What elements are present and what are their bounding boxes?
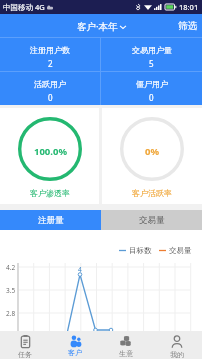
button[interactable]: 活跃用户 — [0, 72, 100, 105]
staticText: 我的 — [170, 350, 184, 359]
button[interactable]: Business — [100, 331, 151, 359]
staticText: 中国移动 4G — [3, 2, 45, 12]
button[interactable]: 注册用户数 — [0, 38, 100, 71]
staticText: 2 — [48, 58, 53, 69]
staticText: 0% — [145, 145, 160, 158]
button[interactable]: Tasks — [0, 331, 50, 359]
button[interactable]: Profile — [151, 331, 202, 359]
staticText: 3.5 — [6, 286, 16, 295]
button[interactable]: 100.0% — [0, 108, 99, 204]
staticText: 交易用户量 — [132, 45, 172, 55]
staticText: 筛选 — [178, 20, 197, 32]
staticText: 100.0% — [34, 145, 67, 158]
button[interactable]: 客户·本年 — [71, 17, 132, 36]
staticText: 交易量 — [169, 246, 192, 255]
staticText: 客户渗透率 — [30, 188, 70, 198]
staticText: 4.2 — [6, 263, 16, 272]
staticText: 客户 — [68, 348, 82, 357]
button[interactable]: Customers — [50, 331, 100, 359]
staticText: 目标数 — [129, 246, 152, 255]
staticText: 注册量 — [38, 215, 64, 226]
staticText: 18:01 — [179, 2, 199, 12]
staticText: 0 — [149, 92, 154, 103]
staticText: 0 — [48, 92, 53, 103]
staticText: 客户·本年 — [77, 20, 118, 33]
staticText: 2.8 — [6, 309, 16, 318]
button[interactable]: 0% — [102, 108, 202, 204]
staticText: 生意 — [119, 349, 133, 358]
button[interactable]: 交易用户量 — [101, 38, 202, 71]
button[interactable]: 筛选 — [170, 14, 202, 38]
staticText: 注册用户数 — [30, 45, 70, 55]
staticText: 交易量 — [139, 215, 165, 226]
button[interactable]: 注册量 — [0, 210, 101, 230]
staticText: 活跃用户 — [34, 79, 66, 89]
button[interactable]: 交易量 — [101, 210, 202, 230]
button[interactable]: 僵尸用户 — [101, 72, 202, 105]
staticText: 僵尸用户 — [136, 79, 168, 89]
staticText: 任务 — [18, 350, 32, 359]
staticText: 4 — [78, 265, 82, 274]
staticText: 5 — [149, 58, 154, 69]
staticText: 客户活跃率 — [132, 188, 172, 198]
